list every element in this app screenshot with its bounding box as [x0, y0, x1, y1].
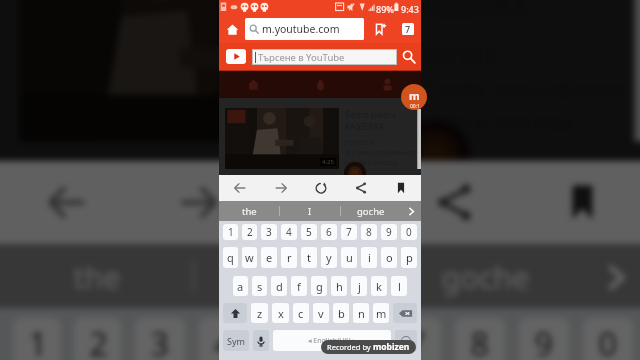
button[interactable]: 5: [262, 318, 314, 360]
button[interactable]: t: [301, 247, 317, 268]
button[interactable]: 7: [341, 224, 357, 240]
button[interactable]: Share: [390, 161, 518, 244]
button[interactable]: Share: [341, 175, 381, 201]
button[interactable]: e: [261, 247, 277, 268]
button[interactable]: Forward: [260, 175, 301, 201]
button[interactable]: Home: [220, 17, 245, 42]
button[interactable]: the: [219, 201, 279, 221]
button[interactable]: 9: [381, 224, 397, 240]
staticText: 9:43: [401, 3, 419, 15]
button[interactable]: f: [291, 276, 307, 296]
button[interactable]: 9: [518, 318, 570, 360]
button[interactable]: 4: [198, 318, 250, 360]
button[interactable]: s: [252, 276, 267, 296]
button[interactable]: l: [391, 276, 407, 296]
staticText: 1: [29, 321, 48, 360]
button[interactable]: Search: [400, 48, 418, 66]
button[interactable]: u: [341, 247, 357, 268]
staticText: u: [346, 250, 353, 265]
other: Recording: [401, 84, 427, 110]
button[interactable]: a: [233, 276, 248, 296]
button[interactable]: 0: [401, 224, 417, 240]
button[interactable]: Bookmarks: [381, 175, 421, 201]
button[interactable]: ◂ English(UK) ▸: [273, 330, 391, 351]
button[interactable]: 7: [390, 318, 442, 360]
staticText: e: [266, 250, 273, 265]
button[interactable]: k: [371, 276, 387, 296]
button[interactable]: n: [353, 303, 369, 323]
button[interactable]: Reload: [301, 175, 341, 201]
button[interactable]: 6: [326, 318, 378, 360]
button[interactable]: I: [280, 201, 340, 221]
button[interactable]: Back: [219, 175, 260, 201]
staticText: the: [242, 205, 257, 218]
button[interactable]: 1: [223, 224, 238, 240]
staticText: goche: [357, 205, 385, 218]
staticText: FOREVER •: [403, 42, 515, 74]
button[interactable]: Shift: [223, 303, 247, 323]
button[interactable]: 4: [281, 224, 297, 240]
button[interactable]: m.youtube.com: [245, 18, 364, 40]
button[interactable]: 8: [361, 224, 377, 240]
staticText: k: [376, 279, 382, 294]
button[interactable]: r: [281, 247, 297, 268]
button[interactable]: 3: [134, 318, 186, 360]
staticText: 4:25: [330, 106, 368, 132]
button[interactable]: d: [271, 276, 287, 296]
staticText: 7: [406, 321, 426, 360]
button[interactable]: c: [293, 303, 309, 323]
button[interactable]: Tabs: [402, 23, 414, 35]
button[interactable]: More suggestions: [582, 244, 640, 308]
button[interactable]: Trending: [287, 71, 354, 98]
button[interactable]: Bookmarks: [518, 161, 640, 244]
staticText: r: [287, 250, 292, 265]
button[interactable]: y: [321, 247, 337, 268]
button[interactable]: YouTube home: [226, 49, 246, 64]
button[interactable]: i: [361, 247, 377, 268]
button[interactable]: 8: [454, 318, 506, 360]
button[interactable]: Търсене в YouTube: [252, 49, 397, 65]
button[interactable]: 2: [74, 318, 122, 360]
button[interactable]: I: [195, 244, 387, 308]
button[interactable]: j: [351, 276, 367, 296]
button[interactable]: goche: [341, 201, 401, 221]
button[interactable]: m: [373, 303, 389, 323]
button[interactable]: More suggestions: [401, 201, 421, 221]
button[interactable]: Sym: [223, 330, 249, 351]
staticText: преди 6 месеца: [403, 106, 576, 138]
button[interactable]: Home: [219, 71, 287, 98]
button[interactable]: Add bookmark: [372, 20, 390, 38]
staticText: b: [338, 306, 345, 321]
staticText: 00:1: [410, 103, 420, 110]
button[interactable]: 3: [261, 224, 277, 240]
button[interactable]: Reload: [262, 161, 390, 244]
button[interactable]: w: [242, 247, 257, 268]
button[interactable]: b: [333, 303, 349, 323]
button[interactable]: Account: [354, 71, 421, 98]
button[interactable]: 0: [582, 318, 634, 360]
button[interactable]: x: [272, 303, 289, 323]
button[interactable]: q: [223, 247, 238, 268]
button[interactable]: 2: [242, 224, 257, 240]
staticText: 4:25: [322, 158, 334, 166]
button[interactable]: v: [313, 303, 329, 323]
staticText: 3: [150, 321, 170, 360]
button[interactable]: Backspace: [393, 303, 417, 323]
button[interactable]: 5: [301, 224, 317, 240]
button[interactable]: Forward: [131, 161, 262, 244]
button[interactable]: 6: [321, 224, 337, 240]
button[interactable]: z: [251, 303, 268, 323]
button[interactable]: Back: [0, 161, 131, 244]
button[interactable]: Settings: [395, 330, 417, 351]
button[interactable]: g: [311, 276, 327, 296]
button[interactable]: h: [331, 276, 347, 296]
button[interactable]: 1: [13, 318, 61, 360]
button[interactable]: p: [401, 247, 417, 268]
button[interactable]: goche: [390, 244, 582, 308]
button[interactable]: o: [381, 247, 397, 268]
button[interactable]: the: [0, 244, 192, 308]
staticText: 6: [342, 321, 362, 360]
button[interactable]: Voice input: [253, 330, 269, 351]
staticText: 4: [214, 321, 234, 360]
